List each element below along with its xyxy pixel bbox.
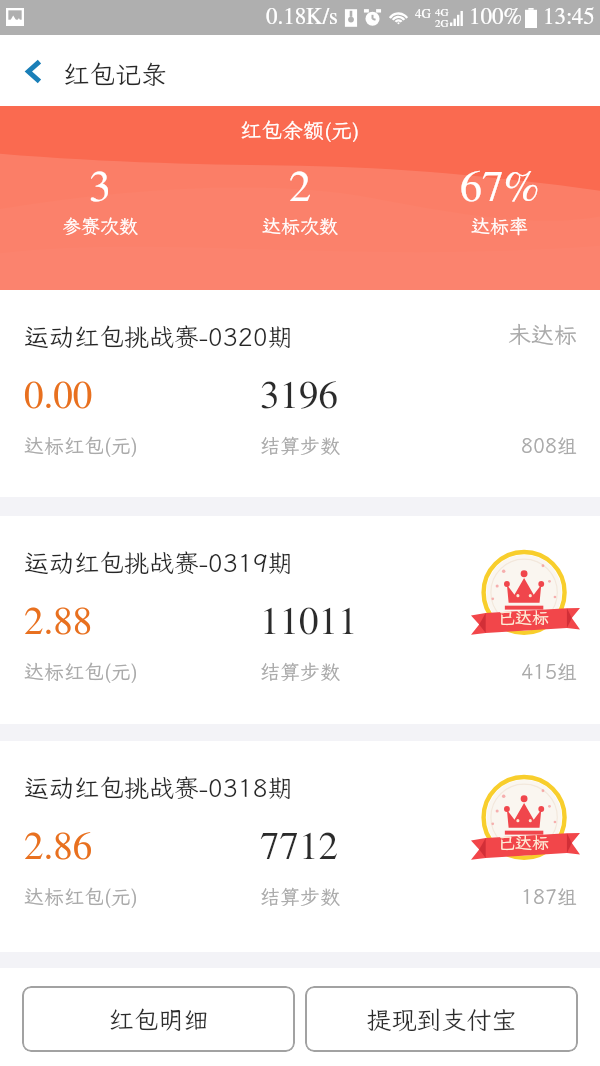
staticText: 达标率 <box>471 213 529 238</box>
staticText: 达标红包(元) <box>24 883 138 909</box>
staticText: 3196 <box>260 377 339 416</box>
staticText: 红包余额(元) <box>240 116 360 144</box>
staticText: 11011 <box>260 603 358 642</box>
staticText: 已达标 <box>498 831 549 853</box>
staticText: 808组 <box>521 432 577 458</box>
staticText: 参赛次数 <box>62 213 139 238</box>
staticText: 2 <box>289 166 311 210</box>
staticText: 13:45 <box>543 6 595 29</box>
staticText: 红包记录 <box>63 57 168 91</box>
staticText: 4G <box>435 7 449 18</box>
button[interactable]: 红包明细 <box>22 986 295 1052</box>
button[interactable]: 运动红包挑战赛-0319期 <box>0 516 600 724</box>
staticText: 运动红包挑战赛-0318期 <box>24 771 293 804</box>
staticText: 67% <box>460 166 540 210</box>
staticText: 0.00 <box>24 377 93 416</box>
staticText: 结算步数 <box>260 658 340 684</box>
button[interactable]: 提现到支付宝 <box>305 986 578 1052</box>
staticText: 0.18K/s <box>266 6 338 29</box>
staticText: 提现到支付宝 <box>366 1003 517 1036</box>
staticText: 红包明细 <box>108 1003 209 1036</box>
staticText: 4G <box>415 8 431 21</box>
staticText: 达标红包(元) <box>24 432 138 458</box>
staticText: 已达标 <box>498 606 549 628</box>
button[interactable]: Back <box>0 40 62 102</box>
staticText: 2G <box>435 18 449 29</box>
staticText: 187组 <box>521 883 577 909</box>
staticText: 结算步数 <box>260 883 340 909</box>
staticText: 运动红包挑战赛-0319期 <box>24 546 293 579</box>
staticText: 2.88 <box>24 603 93 642</box>
button[interactable]: 运动红包挑战赛-0320期 <box>0 290 600 497</box>
staticText: 2.86 <box>24 828 93 867</box>
staticText: 7712 <box>260 828 339 867</box>
button[interactable]: 运动红包挑战赛-0318期 <box>0 741 600 952</box>
staticText: 415组 <box>521 658 577 684</box>
staticText: 100% <box>469 6 522 29</box>
staticText: 结算步数 <box>260 432 340 458</box>
staticText: 3 <box>89 166 111 210</box>
staticText: 达标次数 <box>262 213 339 238</box>
staticText: 未达标 <box>508 319 577 349</box>
staticText: 达标红包(元) <box>24 658 138 684</box>
staticText: 运动红包挑战赛-0320期 <box>24 320 293 353</box>
